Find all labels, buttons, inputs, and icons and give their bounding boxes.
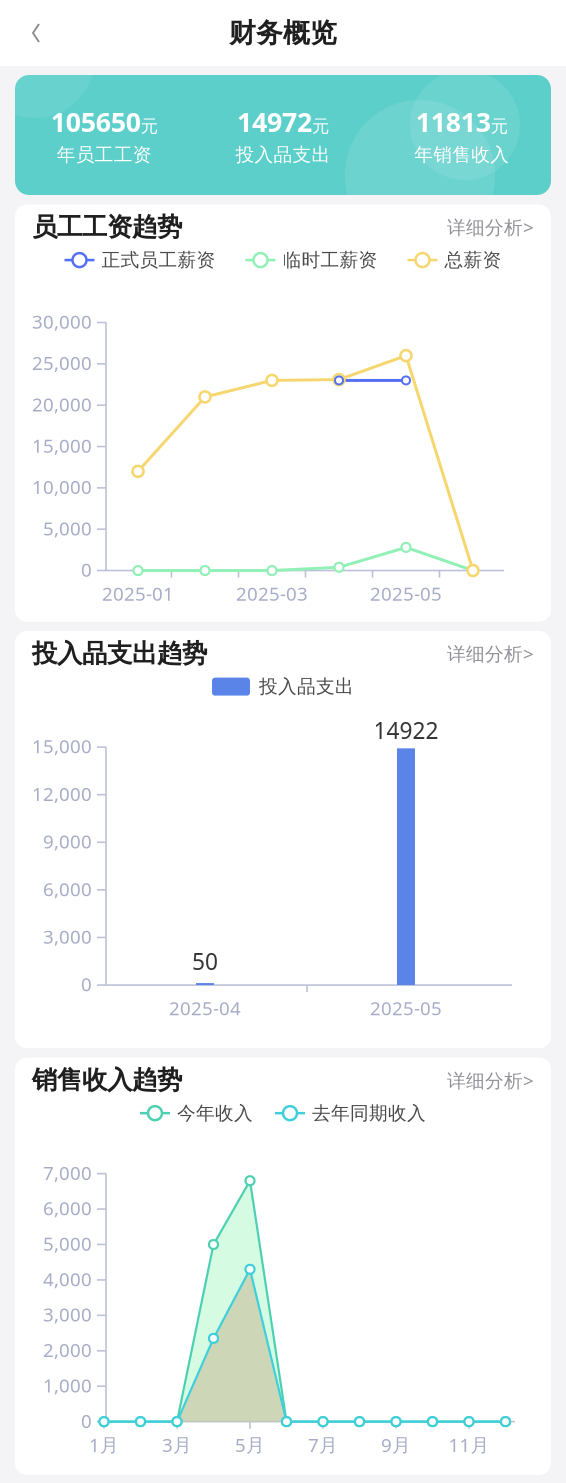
staticText: 投入品支出 (259, 675, 354, 698)
staticText: 50 (192, 946, 218, 976)
staticText: 10,000 (32, 474, 92, 499)
staticText: 25,000 (32, 350, 92, 375)
staticText: 12,000 (32, 781, 92, 806)
staticText: 2025-04 (169, 996, 241, 1020)
staticText: 今年收入 (177, 1102, 253, 1125)
staticText: 员工工资趋势 (32, 211, 182, 243)
staticText: 2025-05 (370, 996, 442, 1020)
staticText: 元 (141, 115, 158, 137)
staticText: 0 (81, 1408, 92, 1433)
staticText: 15,000 (32, 734, 92, 758)
staticText: 30,000 (32, 309, 92, 334)
button[interactable]: 详细分析> (447, 215, 534, 239)
staticText: 元 (312, 115, 329, 137)
staticText: 15,000 (32, 433, 92, 458)
staticText: 11813 (416, 104, 491, 139)
staticText: 9,000 (43, 829, 92, 854)
staticText: 销售收入趋势 (32, 1065, 182, 1096)
staticText: 7,000 (43, 1160, 92, 1185)
button[interactable]: 详细分析> (447, 1068, 534, 1093)
staticText: 详细分析> (447, 1068, 534, 1093)
staticText: 投入品支出 (235, 143, 330, 166)
staticText: 14972 (237, 104, 312, 139)
staticText: 年员工工资 (57, 143, 152, 166)
staticText: 详细分析> (447, 215, 534, 239)
button[interactable]: 详细分析> (447, 641, 534, 666)
staticText: 正式员工薪资 (101, 249, 215, 271)
staticText: 财务概览 (229, 17, 337, 49)
staticText: 14922 (373, 715, 438, 745)
staticText: 5,000 (43, 1231, 92, 1256)
staticText: 0 (81, 557, 92, 582)
staticText: 去年同期收入 (312, 1102, 426, 1125)
staticText: 详细分析> (447, 641, 534, 666)
staticText: 0 (81, 972, 92, 996)
staticText: 9月 (381, 1432, 411, 1457)
staticText: 6,000 (43, 876, 92, 901)
staticText: 5,000 (43, 516, 92, 541)
staticText: 元 (491, 115, 508, 137)
staticText: 总薪资 (444, 249, 501, 271)
staticText: 5月 (235, 1432, 265, 1457)
staticText: 4,000 (43, 1266, 92, 1291)
staticText: 20,000 (32, 392, 92, 417)
staticText: 105650 (51, 104, 141, 139)
staticText: 1,000 (43, 1373, 92, 1398)
staticText: 2025-03 (236, 581, 308, 606)
staticText: 年销售收入 (414, 143, 509, 166)
staticText: 2025-05 (370, 581, 442, 606)
staticText: 6,000 (43, 1196, 92, 1220)
staticText: 2025-01 (102, 581, 174, 606)
staticText: 临时工薪资 (282, 249, 377, 271)
staticText: 3,000 (43, 924, 92, 949)
staticText: 1月 (89, 1432, 119, 1457)
staticText: 7月 (308, 1432, 338, 1457)
staticText: 11月 (448, 1432, 489, 1457)
staticText: 3月 (162, 1432, 192, 1457)
staticText: 投入品支出趋势 (32, 638, 207, 669)
staticText: 2,000 (43, 1337, 92, 1362)
staticText: 3,000 (43, 1302, 92, 1327)
button[interactable]: 返回 (0, 8, 60, 58)
